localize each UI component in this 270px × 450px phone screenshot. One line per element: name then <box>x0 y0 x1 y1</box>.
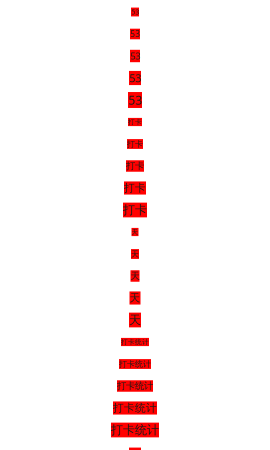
staticText: 天 <box>129 291 140 304</box>
staticText: 53 <box>130 29 140 39</box>
staticText: 53 <box>128 92 142 108</box>
staticText: 天 <box>131 249 139 259</box>
staticText: 打卡统计 <box>113 401 157 414</box>
staticText: 打卡 <box>126 160 144 172</box>
staticText: 打卡 <box>124 181 146 194</box>
staticText: 53 <box>129 71 141 85</box>
staticText: 打卡 <box>127 139 143 149</box>
staticText: 打卡 <box>123 203 147 217</box>
staticText: 打卡统计 <box>117 380 153 392</box>
staticText: 天 <box>129 313 141 327</box>
staticText: 打卡 <box>128 118 142 126</box>
staticText: 天 <box>131 228 138 236</box>
staticText: 打卡统计 <box>119 359 151 369</box>
staticText: 53 <box>131 8 139 16</box>
staticText: 天 <box>130 270 139 282</box>
staticText: 打卡统计 <box>121 338 149 346</box>
staticText: 53 <box>130 50 140 62</box>
staticText: 打卡统计 <box>111 423 159 437</box>
